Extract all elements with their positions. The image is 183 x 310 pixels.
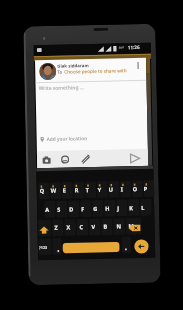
staticText: B	[103, 223, 108, 231]
staticText: F	[81, 205, 85, 213]
staticText: ?123	[39, 245, 48, 250]
staticText: T	[86, 186, 90, 194]
staticText: Write something ...	[38, 84, 85, 92]
staticText: W	[51, 187, 57, 195]
staticText: R	[75, 186, 79, 194]
button[interactable]	[37, 149, 148, 168]
staticText: H	[105, 205, 110, 213]
button[interactable]: tilak siddaram	[35, 58, 148, 168]
button[interactable]	[39, 63, 56, 80]
staticText: D	[69, 205, 74, 213]
staticText: C	[79, 223, 84, 231]
staticText: G	[93, 205, 98, 213]
staticText: O	[133, 185, 138, 193]
staticText: Z	[54, 224, 59, 232]
staticText: Y	[98, 186, 102, 194]
staticText: 11:26	[128, 44, 140, 50]
staticText: J	[117, 204, 119, 212]
staticText: K	[129, 204, 133, 212]
staticText: L	[141, 204, 145, 212]
staticText: M	[128, 222, 135, 230]
staticText: S	[57, 206, 61, 214]
staticText: sun	[119, 45, 125, 49]
staticText: Choose people to share with	[64, 67, 127, 74]
staticText: V	[91, 223, 96, 231]
staticText: Add your location	[47, 135, 88, 143]
staticText: N	[116, 222, 122, 230]
staticText: E	[63, 186, 67, 195]
staticText: tilak siddaram	[57, 62, 89, 69]
staticText: To	[57, 69, 63, 75]
button[interactable]: Q	[36, 166, 155, 260]
staticText: Q	[40, 187, 45, 195]
staticText: A	[45, 206, 49, 214]
staticText: U	[109, 186, 114, 194]
staticText: X	[66, 223, 71, 232]
staticText: I	[121, 185, 124, 193]
staticText: P	[144, 185, 148, 193]
